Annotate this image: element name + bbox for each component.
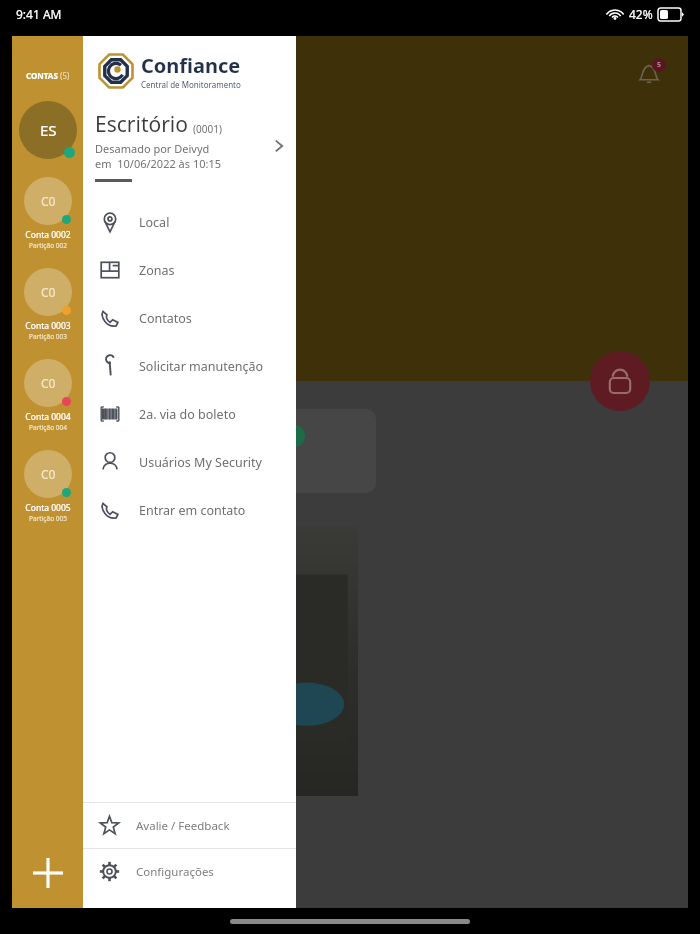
button[interactable]: Usuários My Security	[83, 438, 296, 486]
button[interactable]: C0	[24, 268, 72, 341]
button[interactable]: Solicitar manutenção	[83, 342, 296, 390]
button[interactable]: Local	[83, 198, 296, 246]
staticText: Usuários My Security	[139, 454, 262, 471]
button[interactable]: 1	[221, 409, 376, 493]
staticText: 42%	[629, 6, 653, 22]
button[interactable]: Avalie / Feedback	[83, 803, 296, 848]
staticText: ES	[40, 120, 57, 140]
button[interactable]: 2a. via do boleto	[83, 390, 296, 438]
button[interactable]	[16, 409, 206, 493]
staticText: Configurações	[136, 864, 214, 880]
staticText: Entrar em contato	[139, 502, 246, 519]
staticText: Avalie / Feedback	[136, 818, 230, 834]
staticText: C0	[41, 193, 56, 209]
button[interactable]: Escritório	[83, 110, 296, 182]
button[interactable]: Notificações	[632, 58, 666, 92]
staticText: em 11/09/2021 às 10:15	[22, 334, 134, 348]
staticText: Escritório	[95, 110, 188, 139]
staticText: C0	[41, 375, 56, 391]
staticText: Solicitar manutenção	[139, 358, 264, 375]
staticText: Partição 003	[29, 332, 67, 341]
button[interactable]: C0	[24, 177, 72, 250]
button[interactable]: Pânico	[34, 769, 90, 825]
staticText: em 10/06/2022 às 10:15	[95, 156, 222, 171]
staticText: CONTAS	[26, 70, 58, 81]
staticText: 1	[291, 429, 297, 443]
staticText: Confiance	[74, 56, 174, 83]
staticText: (5)	[58, 70, 70, 81]
staticText: Confiance	[141, 52, 241, 79]
staticText: Monitoramento Inteligente	[74, 83, 177, 94]
staticText: Escritório	[22, 291, 107, 317]
staticText: Partição 005	[29, 514, 67, 523]
staticText: Conta 0004	[25, 411, 71, 423]
staticText: Local	[139, 214, 170, 231]
staticText: (0001)	[193, 122, 222, 136]
button[interactable]: Configurações	[83, 849, 296, 894]
button[interactable]: Zonas	[83, 246, 296, 294]
staticText: Conta 0005	[25, 502, 71, 514]
staticText: Central de Monitoramento	[141, 79, 241, 90]
staticText: Conta 0003	[25, 320, 71, 332]
staticText: 2a. via do boleto	[139, 406, 236, 423]
staticText: Conta 0002	[25, 229, 71, 241]
staticText: Serviços	[239, 457, 282, 472]
staticText: C0	[41, 466, 56, 482]
button[interactable]: Contatos	[83, 294, 296, 342]
staticText: Contatos	[139, 310, 192, 327]
button[interactable]: C0	[24, 359, 72, 432]
button[interactable]: Entrar em contato	[83, 486, 296, 534]
staticText: Partição 004	[29, 423, 67, 432]
staticText: Armado	[50, 320, 90, 334]
staticText: C0	[41, 284, 56, 300]
button[interactable]: C0	[24, 450, 72, 523]
staticText: 5	[657, 60, 662, 70]
button[interactable]: Adicionar conta	[12, 838, 83, 908]
button[interactable]: ES	[19, 101, 77, 159]
staticText: Partição 002	[29, 241, 67, 250]
staticText: ES	[65, 178, 94, 213]
staticText: 9:41 AM	[16, 6, 62, 22]
staticText: Desamado por Deivyd	[95, 141, 210, 156]
staticText: Zonas	[139, 262, 175, 279]
button[interactable]: Armar	[590, 351, 650, 411]
